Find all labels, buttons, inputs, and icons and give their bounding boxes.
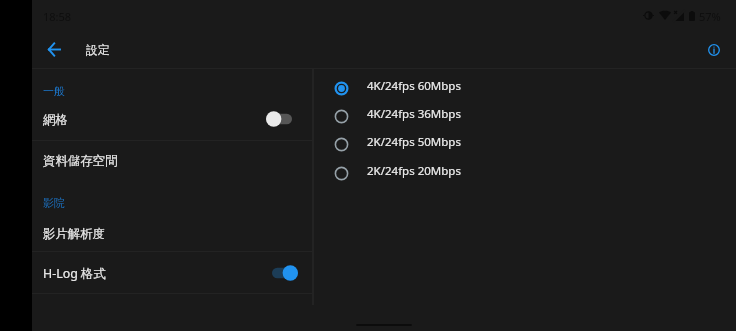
staticText: 資料儲存空間 [43,153,118,169]
staticText: 影片解析度 [43,226,105,242]
button[interactable]: 4K/24fps 36Mbps [314,102,736,130]
staticText: 網格 [43,112,68,128]
staticText: H-Log 格式 [43,265,106,282]
staticText: 4K/24fps 60Mbps [367,78,461,94]
button[interactable]: 網格 [32,101,312,139]
staticText: 57% [699,9,721,24]
button[interactable]: H-Log 格式 [32,253,312,294]
staticText: 4K/24fps 36Mbps [367,106,461,122]
button[interactable]: Back [34,29,74,69]
staticText: 設定 [86,43,110,58]
staticText: 影院 [43,196,65,210]
staticText: 18:58 [43,9,72,24]
staticText: 一般 [43,84,65,98]
button[interactable]: 2K/24fps 50Mbps [314,130,736,158]
button[interactable]: 資料儲存空間 [32,141,312,180]
button[interactable]: Info [698,34,730,66]
staticText: 2K/24fps 20Mbps [367,163,461,179]
staticText: 2K/24fps 50Mbps [367,134,461,150]
button[interactable]: 影片解析度 [32,214,312,253]
button[interactable]: 4K/24fps 60Mbps [314,74,736,102]
button[interactable]: 2K/24fps 20Mbps [314,159,736,187]
